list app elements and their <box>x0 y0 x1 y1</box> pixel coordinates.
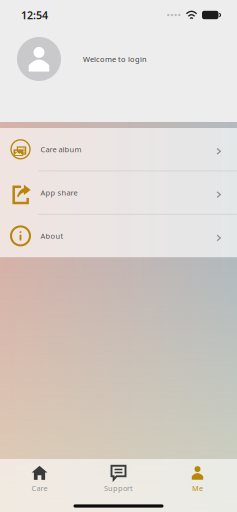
button[interactable]: App share <box>0 171 237 214</box>
button[interactable]: About <box>0 215 237 257</box>
staticText: Care album <box>40 144 81 154</box>
button[interactable]: Care <box>0 460 79 498</box>
staticText: About <box>40 231 63 241</box>
staticText: Care <box>31 483 47 493</box>
button[interactable]: Care album <box>0 128 237 171</box>
staticText: App share <box>40 187 77 198</box>
staticText: Me <box>192 483 203 493</box>
staticText: Support <box>104 483 133 493</box>
staticText: 12:54 <box>21 8 48 22</box>
staticText: Welcome to login <box>83 54 147 64</box>
button[interactable]: Me <box>158 460 237 498</box>
button[interactable]: Support <box>79 460 158 498</box>
